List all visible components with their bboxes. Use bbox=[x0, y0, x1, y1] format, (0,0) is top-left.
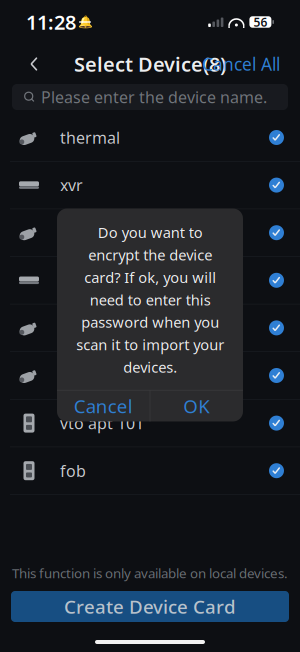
staticText: thermal bbox=[60, 127, 120, 148]
button[interactable]: tioc bbox=[0, 352, 300, 400]
staticText: Cancel bbox=[74, 394, 133, 418]
staticText: tioc bbox=[60, 317, 88, 338]
button[interactable]: OK bbox=[150, 390, 243, 421]
staticText: Create Device Card bbox=[64, 594, 236, 619]
button[interactable]: Cancel bbox=[57, 390, 150, 421]
staticText: 56 bbox=[253, 14, 267, 30]
staticText: xvr bbox=[60, 174, 83, 196]
button[interactable]: fob bbox=[0, 447, 300, 495]
staticText: 🔔 bbox=[77, 15, 92, 29]
staticText: OK bbox=[183, 394, 210, 418]
button[interactable]: Cancel All bbox=[196, 44, 286, 84]
staticText: vto apt 101 bbox=[60, 412, 144, 434]
staticText: Select Device(8) bbox=[74, 51, 226, 77]
staticText: This function is only available on local… bbox=[12, 564, 288, 582]
staticText: vari test bbox=[60, 222, 121, 243]
staticText: fob bbox=[60, 460, 86, 481]
staticText: Do you want to encrypt the device card? … bbox=[76, 222, 224, 377]
button[interactable]: n52 bbox=[0, 257, 300, 304]
button[interactable]: xvr bbox=[0, 162, 300, 209]
staticText: Cancel All bbox=[202, 52, 280, 75]
button[interactable]: tioc bbox=[0, 304, 300, 352]
button[interactable]: thermal bbox=[0, 114, 300, 162]
button[interactable]: Create Device Card bbox=[11, 591, 289, 622]
button[interactable]: vari test bbox=[0, 209, 300, 257]
staticText: 11:28 bbox=[26, 9, 76, 35]
button[interactable]: Please enter the device name. bbox=[12, 84, 288, 110]
button[interactable]: vto apt 101 bbox=[0, 400, 300, 447]
staticText: Please enter the device name. bbox=[41, 86, 267, 108]
staticText: n52 bbox=[60, 270, 88, 291]
button[interactable]: Back bbox=[14, 44, 54, 84]
